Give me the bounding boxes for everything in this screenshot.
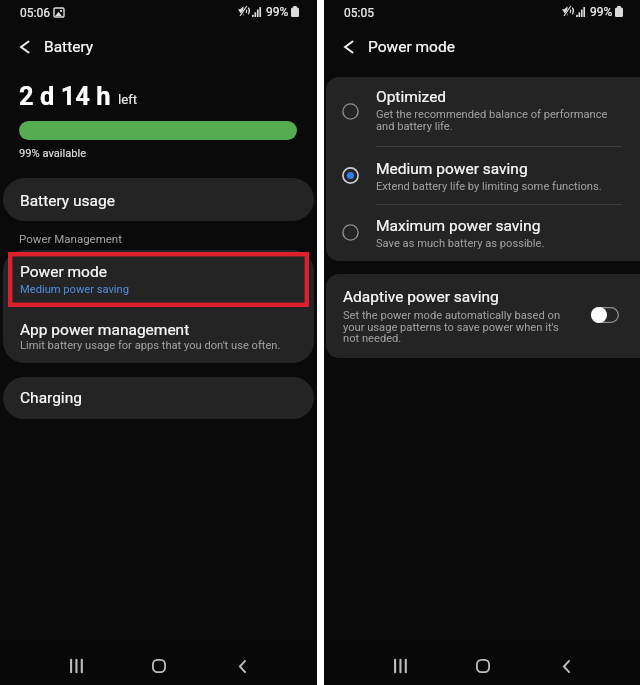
staticText: Extend battery life by limiting some fun… bbox=[376, 180, 602, 193]
staticText: 2 d 14 h bbox=[19, 81, 111, 111]
staticText: App power management bbox=[20, 321, 190, 339]
staticText: Power Management bbox=[19, 232, 122, 245]
staticText: 99% available bbox=[19, 147, 87, 160]
staticText: Battery usage bbox=[20, 192, 115, 210]
staticText: Optimized bbox=[376, 88, 447, 106]
button[interactable]: Optimized bbox=[326, 77, 640, 146]
staticText: left bbox=[118, 92, 138, 107]
button[interactable]: Navigate up bbox=[10, 32, 39, 61]
staticText: Medium power saving bbox=[20, 283, 129, 296]
button[interactable]: App power management bbox=[3, 307, 314, 363]
button[interactable]: Navigate up bbox=[334, 32, 363, 61]
staticText: 99% bbox=[266, 5, 289, 19]
button[interactable]: Home bbox=[461, 644, 505, 685]
button[interactable]: Recent apps bbox=[378, 644, 422, 685]
button[interactable]: Back bbox=[220, 644, 264, 685]
button[interactable]: Battery usage bbox=[3, 178, 314, 221]
button[interactable]: Charging bbox=[3, 377, 314, 419]
staticText: 99% bbox=[590, 5, 613, 19]
staticText: 05:06 bbox=[20, 6, 50, 20]
button[interactable]: Maximum power saving bbox=[326, 204, 640, 261]
staticText: Maximum power saving bbox=[376, 217, 541, 235]
staticText: 05:05 bbox=[344, 6, 374, 20]
staticText: Power mode bbox=[20, 263, 107, 281]
staticText: Set the power mode automatically based o… bbox=[343, 309, 561, 344]
button[interactable]: Home bbox=[137, 644, 181, 685]
staticText: Power mode bbox=[368, 38, 455, 56]
button[interactable]: Medium power saving bbox=[326, 146, 640, 204]
staticText: Save as much battery as possible. bbox=[376, 237, 545, 250]
staticText: Charging bbox=[20, 389, 82, 407]
button[interactable]: Adaptive power saving bbox=[326, 274, 640, 358]
staticText: Adaptive power saving bbox=[343, 288, 499, 306]
staticText: Limit battery usage for apps that you do… bbox=[20, 339, 281, 352]
staticText: Battery bbox=[44, 38, 94, 56]
staticText: Medium power saving bbox=[376, 160, 528, 178]
button[interactable]: Power mode bbox=[3, 250, 314, 307]
button[interactable]: Adaptive power saving bbox=[591, 307, 619, 323]
staticText: Get the recommended balance of performan… bbox=[376, 108, 608, 132]
button[interactable]: Back bbox=[544, 644, 588, 685]
button[interactable]: Recent apps bbox=[54, 644, 98, 685]
